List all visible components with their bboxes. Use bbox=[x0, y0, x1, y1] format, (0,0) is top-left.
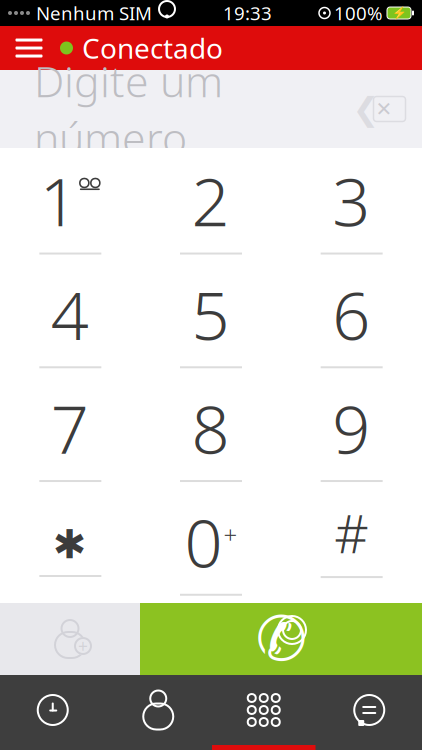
button[interactable]: Menu bbox=[6, 26, 52, 70]
staticText: + bbox=[78, 634, 88, 657]
button[interactable]: Ligar bbox=[140, 603, 422, 675]
button[interactable]: 9 bbox=[281, 375, 422, 489]
staticText: # bbox=[334, 497, 368, 568]
staticText: Nenhum SIM bbox=[36, 1, 152, 25]
staticText: ❮ bbox=[352, 91, 379, 127]
button[interactable]: Mensagens bbox=[316, 675, 422, 750]
staticText: 0 bbox=[184, 497, 222, 586]
button[interactable]: 0 bbox=[141, 489, 281, 603]
staticText: ⚡ bbox=[391, 6, 406, 20]
staticText: Conectado bbox=[82, 29, 223, 67]
button[interactable]: 2 bbox=[141, 148, 281, 262]
staticText: 9 bbox=[332, 383, 370, 472]
button[interactable]: 5 bbox=[141, 262, 281, 376]
staticText: 5 bbox=[191, 270, 229, 358]
staticText: 19:33 bbox=[223, 1, 272, 25]
staticText: 2 bbox=[191, 156, 229, 244]
staticText: + bbox=[223, 518, 237, 550]
staticText: ✕ bbox=[375, 98, 392, 120]
button[interactable]: Apagar bbox=[348, 89, 410, 129]
button[interactable]: ✱ bbox=[0, 489, 141, 603]
button[interactable]: 7 bbox=[0, 375, 141, 489]
staticText: 3 bbox=[332, 156, 370, 244]
button[interactable]: Recentes bbox=[0, 675, 105, 750]
button[interactable]: Contatos bbox=[105, 675, 211, 750]
staticText: 7 bbox=[51, 383, 89, 472]
button[interactable]: Adicionar contato bbox=[0, 603, 140, 675]
button[interactable]: # bbox=[281, 489, 422, 603]
button[interactable]: 3 bbox=[281, 148, 422, 262]
staticText: ✱ bbox=[53, 522, 87, 567]
staticText: 8 bbox=[191, 383, 229, 472]
button[interactable]: 6 bbox=[281, 262, 422, 376]
button[interactable]: 4 bbox=[0, 262, 141, 376]
staticText: Digite um número bbox=[34, 52, 223, 166]
button[interactable]: Teclado bbox=[211, 675, 316, 750]
staticText: 4 bbox=[51, 270, 89, 358]
staticText: 1 bbox=[40, 156, 78, 244]
button[interactable]: 8 bbox=[141, 375, 281, 489]
staticText: ✆ bbox=[255, 604, 306, 674]
staticText: 100% bbox=[334, 1, 383, 25]
staticText: 6 bbox=[332, 270, 370, 358]
button[interactable]: 1 bbox=[0, 148, 141, 262]
